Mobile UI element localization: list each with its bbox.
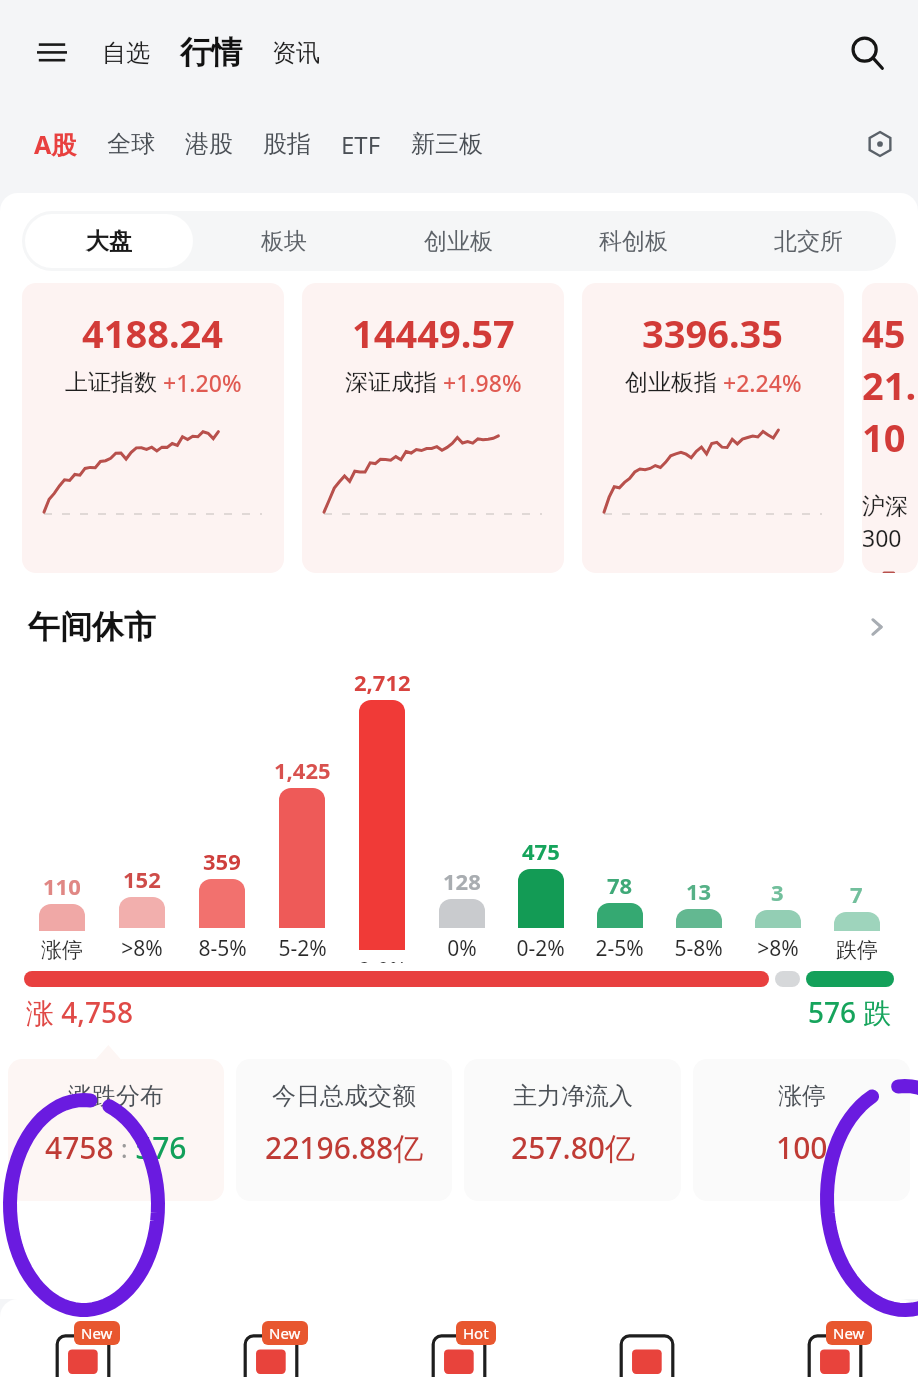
staticText: 100: [776, 1127, 828, 1168]
button[interactable]: 涨跌分布: [8, 1059, 224, 1201]
staticText: 14449.57: [352, 307, 515, 359]
staticText: 3: [771, 877, 784, 907]
button[interactable]: Menu: [28, 29, 76, 77]
staticText: New: [81, 1323, 113, 1343]
staticText: 2-5%: [595, 934, 644, 963]
staticText: 北交所: [774, 227, 843, 256]
staticText: 576 跌: [808, 993, 892, 1031]
staticText: 上证指数: [65, 368, 157, 397]
staticText: 涨 4,758: [26, 993, 133, 1031]
staticText: 22196.88亿: [265, 1127, 424, 1168]
staticText: 1,425: [274, 755, 331, 785]
button[interactable]: 午间休市: [0, 587, 918, 667]
button[interactable]: [39, 904, 85, 931]
staticText: 板块: [261, 227, 307, 256]
button[interactable]: Shortcut 5: [792, 1305, 878, 1371]
staticText: 股指: [263, 129, 311, 159]
button[interactable]: 港股: [177, 123, 241, 165]
staticText: 4521.10: [862, 307, 918, 463]
staticText: 沪深300: [862, 492, 918, 553]
staticText: 5-2%: [278, 934, 327, 963]
button[interactable]: 4188.24: [22, 283, 284, 573]
staticText: 主力净流入: [513, 1081, 633, 1111]
staticText: 今日总成交额: [272, 1081, 416, 1111]
staticText: 港股: [185, 129, 233, 159]
button[interactable]: [119, 897, 165, 928]
staticText: :: [114, 1130, 135, 1165]
button[interactable]: [755, 910, 801, 928]
staticText: 全球: [107, 129, 155, 159]
staticText: 8-5%: [198, 934, 247, 963]
staticText: 475: [522, 836, 560, 866]
button[interactable]: 主力净流入: [464, 1059, 681, 1201]
staticText: 创业板: [424, 227, 493, 256]
staticText: 5-8%: [674, 934, 723, 963]
button[interactable]: [676, 909, 722, 928]
button[interactable]: Shortcut 2: [228, 1305, 314, 1371]
staticText: 自选: [102, 38, 150, 68]
button[interactable]: [518, 869, 564, 928]
staticText: New: [269, 1323, 301, 1343]
button[interactable]: 创业板: [374, 214, 543, 268]
staticText: +2.24%: [723, 367, 802, 398]
staticText: 涨停: [41, 937, 83, 963]
button[interactable]: [439, 899, 485, 928]
staticText: 0%: [447, 934, 477, 963]
button[interactable]: 科创板: [549, 214, 718, 268]
staticText: 128: [443, 866, 481, 896]
staticText: 13: [686, 876, 712, 906]
staticText: 创业板指: [625, 368, 717, 397]
staticText: 359: [203, 846, 241, 876]
staticText: 7: [850, 879, 863, 909]
staticText: 110: [43, 871, 81, 901]
button[interactable]: [359, 700, 405, 950]
button[interactable]: 资讯: [268, 38, 324, 68]
staticText: +1.98%: [443, 367, 522, 398]
button[interactable]: [279, 788, 325, 928]
staticText: 科创板: [599, 227, 668, 256]
staticText: 152: [123, 864, 161, 894]
button[interactable]: 行情: [176, 33, 246, 72]
staticText: 行情: [180, 33, 242, 72]
button[interactable]: [199, 879, 245, 928]
button[interactable]: [834, 912, 880, 931]
staticText: 2-0%: [358, 956, 407, 963]
staticText: ETF: [341, 128, 381, 161]
button[interactable]: 今日总成交额: [236, 1059, 452, 1201]
button[interactable]: 板块: [199, 214, 368, 268]
button[interactable]: Shortcut 4: [604, 1305, 690, 1371]
staticText: Hot: [463, 1323, 489, 1343]
button[interactable]: 自选: [98, 38, 154, 68]
button[interactable]: 3396.35: [582, 283, 844, 573]
button[interactable]: 新三板: [403, 123, 491, 165]
staticText: 深证成指: [345, 368, 437, 397]
staticText: >8%: [757, 934, 799, 963]
staticText: 涨停: [778, 1081, 826, 1111]
staticText: 跌停: [836, 937, 878, 963]
button[interactable]: Customize: [858, 122, 902, 166]
button[interactable]: 14449.57: [302, 283, 564, 573]
staticText: New: [833, 1323, 865, 1343]
staticText: >8%: [121, 934, 163, 963]
button[interactable]: 大盘: [25, 214, 193, 268]
staticText: 576: [135, 1127, 187, 1168]
button[interactable]: ETF: [333, 122, 389, 167]
staticText: A股: [34, 127, 77, 161]
button[interactable]: 全球: [99, 123, 163, 165]
staticText: 涨跌分布: [68, 1081, 164, 1111]
button[interactable]: Search: [840, 26, 894, 80]
button[interactable]: 股指: [255, 123, 319, 165]
staticText: 78: [607, 870, 633, 900]
button[interactable]: 北交所: [724, 214, 893, 268]
button[interactable]: A股: [26, 121, 85, 167]
staticText: +1.20%: [163, 367, 242, 398]
button[interactable]: 涨停: [693, 1059, 910, 1201]
button[interactable]: 4521.10: [862, 283, 918, 573]
staticText: 新三板: [411, 129, 483, 159]
button[interactable]: Shortcut 1: [40, 1305, 126, 1371]
staticText: 2,712: [354, 667, 411, 697]
button[interactable]: Shortcut 3: [416, 1305, 502, 1371]
staticText: 午间休市: [28, 607, 156, 647]
staticText: 大盘: [86, 227, 132, 256]
button[interactable]: [597, 903, 643, 928]
